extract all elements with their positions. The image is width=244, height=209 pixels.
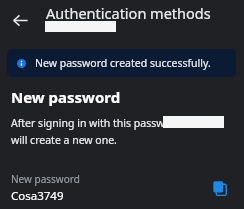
staticText: New password [11,172,80,186]
staticText: will create a new one. [11,133,117,147]
staticText: After signing in with this password, [11,116,185,130]
staticText: New password created successfully. [35,56,211,70]
button[interactable]: Copy password [206,174,234,202]
button[interactable]: Back [4,4,36,36]
staticText: New password [11,87,121,107]
button[interactable]: New password created successfully. [7,49,236,77]
staticText: Cosa3749 [11,188,64,204]
button[interactable]: New password [0,168,244,208]
staticText: Authentication methods [46,3,211,23]
